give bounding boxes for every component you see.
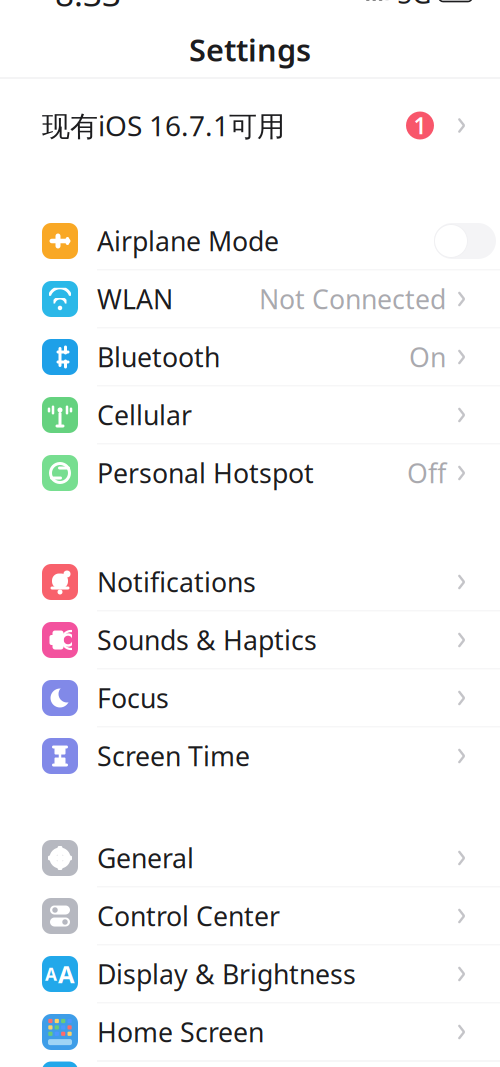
button[interactable]: Sounds & Haptics [0,611,500,668]
staticText: Not Connected [259,281,446,317]
staticText: 5G [397,0,431,11]
staticText: Off [407,455,446,491]
button[interactable]: WLAN [0,270,500,327]
staticText: Display & Brightness [97,956,356,992]
button[interactable]: Bluetooth [0,328,500,385]
button[interactable]: A [0,945,500,1002]
staticText: 现有iOS 16.7.1可用 [42,107,285,144]
staticText: Bluetooth [97,339,220,375]
button[interactable]: Screen Time [0,727,500,784]
staticText: Sounds & Haptics [97,622,317,658]
staticText: A [45,962,57,985]
button[interactable]: 现有iOS 16.7.1可用 [0,90,500,160]
staticText: Home Screen [97,1014,264,1050]
staticText: Notifications [97,564,256,600]
staticText: General [97,840,194,876]
staticText: WLAN [97,281,173,317]
button[interactable]: Notifications [0,553,500,610]
staticText: 1 [413,110,426,140]
button[interactable]: Home Screen [0,1003,500,1060]
button[interactable]: Airplane Mode [0,212,500,269]
button[interactable]: Cellular [0,386,500,443]
button[interactable]: Personal Hotspot [0,444,500,501]
staticText: Focus [97,680,169,716]
staticText: Personal Hotspot [97,455,314,491]
staticText: A [58,958,75,990]
staticText: 8:33 [55,0,121,16]
staticText: On [409,339,446,375]
staticText: Screen Time [97,738,250,774]
staticText: Control Center [97,898,280,934]
button[interactable]: Control Center [0,887,500,944]
button[interactable]: General [0,829,500,886]
staticText: Settings [189,29,311,70]
staticText: Cellular [97,397,192,433]
staticText: Airplane Mode [97,223,279,259]
button[interactable]: Focus [0,669,500,726]
